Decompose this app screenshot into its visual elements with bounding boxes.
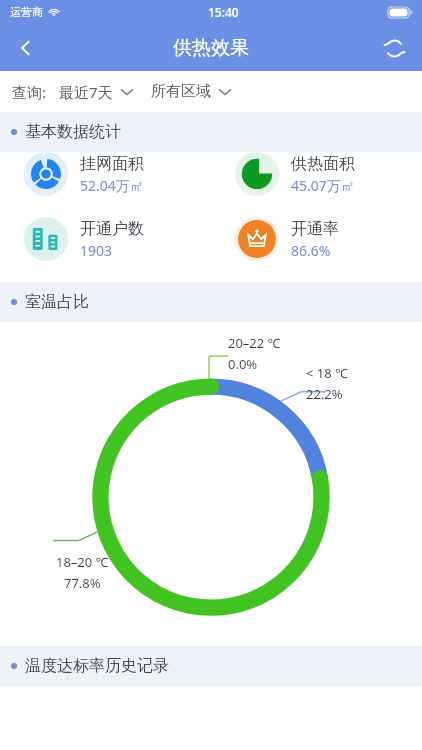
staticText: < 18 ℃ — [306, 364, 349, 382]
staticText: 所有区域 — [151, 82, 211, 101]
staticText: 最近7天 — [59, 82, 113, 102]
staticText: 45.07万㎡ — [291, 176, 355, 195]
staticText: 86.6% — [291, 241, 331, 260]
staticText: 77.8% — [64, 574, 101, 592]
staticText: 20–22 ℃ — [228, 334, 281, 352]
staticText: 温度达标率历史记录 — [25, 656, 169, 676]
staticText: 挂网面积 — [80, 154, 144, 174]
staticText: 供热效果 — [173, 36, 249, 60]
staticText: 1903 — [80, 241, 113, 260]
button[interactable]: 供热面积 — [211, 152, 422, 196]
staticText: 室温占比 — [25, 292, 89, 312]
staticText: 开通户数 — [80, 219, 144, 239]
staticText: 供热面积 — [291, 154, 355, 174]
staticText: 52.04万㎡ — [80, 176, 144, 195]
staticText: 开通率 — [291, 219, 339, 239]
staticText: 18–20 ℃ — [56, 553, 109, 571]
button[interactable]: 挂网面积 — [0, 152, 211, 196]
button[interactable]: Refresh — [372, 26, 416, 70]
button[interactable]: 开通户数 — [0, 217, 211, 261]
staticText: 基本数据统计 — [25, 122, 121, 142]
staticText: 15:40 — [208, 4, 239, 20]
staticText: 查询: — [12, 82, 47, 102]
button[interactable]: 最近7天 — [57, 78, 135, 106]
staticText: 0.0% — [228, 355, 258, 373]
staticText: 运营商 — [10, 5, 43, 19]
button[interactable]: 开通率 — [211, 217, 422, 261]
button[interactable]: Back — [4, 26, 48, 70]
button[interactable]: 所有区域 — [149, 78, 233, 105]
staticText: 22.2% — [306, 385, 343, 403]
